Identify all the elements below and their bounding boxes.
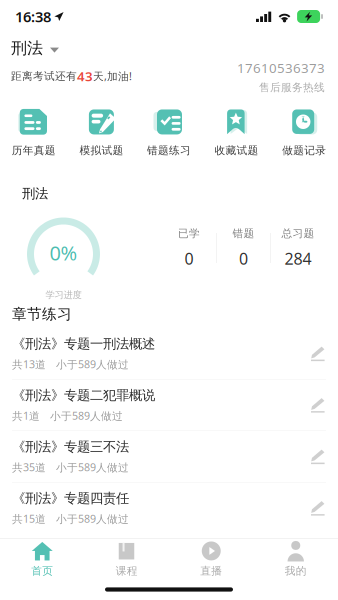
staticText: 共13道 bbox=[12, 357, 46, 371]
staticText: 首页 bbox=[31, 564, 53, 577]
staticText: 共35道 bbox=[12, 460, 46, 474]
staticText: 0 bbox=[184, 248, 193, 269]
button[interactable]: 《刑法》专题一刑法概述 bbox=[0, 328, 338, 379]
staticText: 小于589人做过 bbox=[56, 357, 129, 371]
staticText: 《刑法》专题二犯罪概说 bbox=[12, 387, 155, 404]
staticText: 收藏试题 bbox=[215, 144, 259, 157]
staticText: 章节练习 bbox=[12, 305, 72, 323]
staticText: 天,加油! bbox=[93, 69, 132, 83]
staticText: 学习进度 bbox=[45, 289, 81, 300]
staticText: 错题 bbox=[232, 227, 254, 240]
staticText: 《刑法》专题一刑法概述 bbox=[12, 336, 155, 352]
staticText: 课程 bbox=[116, 564, 138, 577]
staticText: 小于589人做过 bbox=[56, 512, 129, 526]
button[interactable]: 《刑法》专题四责任 bbox=[0, 482, 338, 533]
staticText: 0% bbox=[49, 239, 77, 266]
button[interactable]: 《刑法》专题二犯罪概说 bbox=[0, 379, 338, 430]
staticText: 模拟试题 bbox=[79, 144, 123, 157]
button[interactable]: 模拟试题 bbox=[68, 109, 135, 157]
staticText: 0 bbox=[239, 248, 248, 269]
button[interactable]: 做题记录 bbox=[270, 109, 338, 157]
staticText: 《刑法》专题三不法 bbox=[12, 439, 129, 455]
staticText: 已学 bbox=[178, 227, 200, 240]
staticText: 17610536373 bbox=[237, 59, 325, 77]
staticText: 做题记录 bbox=[282, 144, 326, 157]
staticText: 284 bbox=[284, 248, 311, 269]
staticText: 共15道 bbox=[12, 512, 46, 526]
staticText: 刑法 bbox=[22, 185, 48, 202]
staticText: 售后服务热线 bbox=[259, 81, 325, 94]
staticText: 错题练习 bbox=[147, 144, 191, 157]
button[interactable]: 我的 bbox=[253, 537, 338, 581]
staticText: 总习题 bbox=[281, 227, 314, 240]
button[interactable]: 历年真题 bbox=[0, 109, 68, 157]
button[interactable]: 收藏试题 bbox=[203, 109, 270, 157]
staticText: 小于589人做过 bbox=[50, 409, 123, 423]
staticText: 16:38 bbox=[15, 7, 51, 26]
button[interactable]: 课程 bbox=[84, 537, 169, 581]
staticText: 我的 bbox=[285, 564, 307, 577]
button[interactable]: 刑法 bbox=[11, 36, 59, 60]
staticText: 《刑法》专题四责任 bbox=[12, 490, 129, 507]
staticText: 直播 bbox=[200, 564, 222, 577]
staticText: 刑法 bbox=[11, 38, 43, 58]
staticText: 历年真题 bbox=[12, 144, 56, 157]
staticText: 小于589人做过 bbox=[56, 460, 129, 474]
button[interactable]: 直播 bbox=[169, 537, 253, 581]
button[interactable]: 首页 bbox=[0, 537, 84, 581]
button[interactable]: 错题练习 bbox=[135, 109, 203, 157]
button[interactable]: 《刑法》专题三不法 bbox=[0, 431, 338, 482]
staticText: 共1道 bbox=[12, 409, 40, 423]
button[interactable]: 17610536373 bbox=[237, 36, 338, 94]
staticText: 距离考试还有 bbox=[11, 69, 77, 83]
staticText: 43 bbox=[77, 67, 93, 85]
